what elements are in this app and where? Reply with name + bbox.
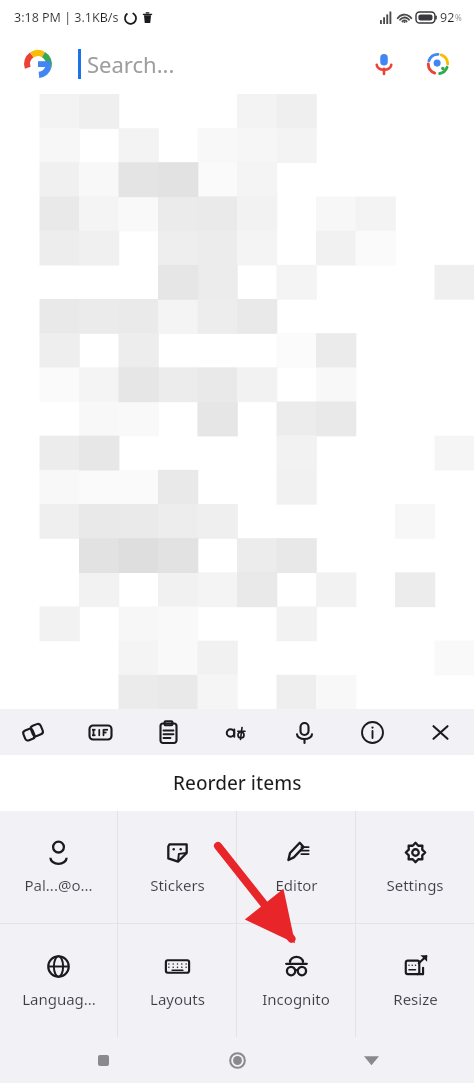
button[interactable]: Home	[214, 1037, 260, 1083]
button[interactable]: Back	[348, 1037, 394, 1083]
button[interactable]: Settings	[356, 811, 474, 923]
button[interactable]: Google	[0, 34, 474, 94]
staticText: Stickers	[150, 875, 205, 895]
button[interactable]: Languag...	[0, 924, 117, 1037]
button[interactable]: Recents	[80, 1037, 126, 1083]
staticText: Incognito	[262, 989, 330, 1009]
staticText: Reorder items	[173, 770, 302, 796]
other: Google	[24, 50, 52, 78]
staticText: Layouts	[150, 989, 205, 1009]
staticText: Settings	[386, 875, 444, 895]
staticText: Search...	[87, 49, 175, 79]
button[interactable]: Translate	[202, 709, 270, 755]
button[interactable]: Pal...@o...	[0, 811, 117, 923]
button[interactable]: Editor	[237, 811, 355, 923]
button[interactable]: Voice input	[270, 709, 338, 755]
staticText: Editor	[275, 875, 318, 895]
button[interactable]: Close	[406, 709, 474, 755]
staticText: %	[455, 12, 462, 23]
button[interactable]: Themes	[0, 709, 67, 755]
staticText: 3:18 PM | 3.1KB/s	[14, 9, 119, 26]
button[interactable]: GIF	[67, 709, 134, 755]
button[interactable]: Clipboard	[134, 709, 202, 755]
button[interactable]: Incognito	[237, 924, 355, 1037]
button[interactable]: Layouts	[118, 924, 236, 1037]
button[interactable]: Voice search	[362, 42, 406, 86]
button[interactable]: Stickers	[118, 811, 236, 923]
button[interactable]: Info	[338, 709, 406, 755]
button[interactable]: Resize	[356, 924, 474, 1037]
button[interactable]: Google Lens	[416, 42, 460, 86]
staticText: Resize	[393, 989, 438, 1009]
staticText: 92	[440, 9, 455, 26]
staticText: Pal...@o...	[24, 875, 93, 895]
staticText: Languag...	[22, 989, 96, 1009]
